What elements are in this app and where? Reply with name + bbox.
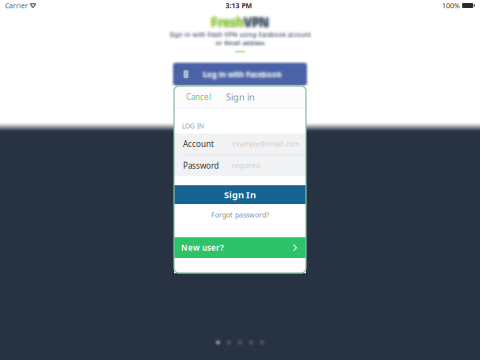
- staticText: Sign in: [226, 90, 255, 103]
- staticText: Fresh: [208, 12, 241, 29]
- staticText: Sign in with Fresh VPN using Facebook ac…: [171, 28, 312, 36]
- staticText: Fresh: [209, 11, 242, 27]
- staticText: or Email address: [215, 38, 264, 47]
- staticText: or Email address: [218, 39, 267, 48]
- staticText: Log in with Facebook: [204, 72, 282, 81]
- staticText: or Email address: [214, 36, 263, 45]
- staticText: Log in with Facebook: [202, 70, 280, 80]
- staticText: Log in with Facebook: [205, 67, 283, 77]
- staticText: Sign in with Fresh VPN using Facebook ac…: [169, 30, 310, 38]
- staticText: Fresh: [214, 11, 247, 27]
- staticText: Log in with Facebook: [205, 69, 283, 79]
- staticText: or Email address: [217, 39, 266, 48]
- staticText: Sign in with Fresh VPN using Facebook ac…: [171, 32, 312, 41]
- button[interactable]: New user?: [174, 237, 306, 258]
- button[interactable]: Cancel: [174, 86, 219, 108]
- staticText: or Email address: [213, 38, 262, 47]
- staticText: or Email address: [213, 37, 262, 46]
- staticText: VPN: [241, 11, 266, 27]
- staticText: or Email address: [217, 36, 266, 45]
- staticText: Log in with Facebook: [205, 72, 283, 81]
- staticText: Sign in with Fresh VPN using Facebook ac…: [169, 28, 310, 36]
- staticText: or Email address: [218, 36, 267, 45]
- staticText: Carrier: [5, 1, 28, 10]
- staticText: Fresh: [212, 17, 245, 33]
- staticText: Log in with Facebook: [201, 67, 279, 77]
- staticText: Log in with Facebook: [201, 69, 279, 79]
- staticText: Log in with Facebook: [201, 68, 279, 78]
- staticText: Log in with Facebook: [204, 69, 282, 79]
- button[interactable]: Forgot password?: [174, 204, 306, 225]
- staticText: or Email address: [215, 37, 264, 46]
- staticText: Fresh: [208, 11, 241, 27]
- staticText: Sign in with Fresh VPN using Facebook ac…: [171, 31, 312, 39]
- staticText: Sign in with Fresh VPN using Facebook ac…: [171, 29, 312, 37]
- staticText: VPN: [247, 15, 272, 32]
- staticText: VPN: [241, 12, 266, 29]
- staticText: Log in with Facebook: [202, 67, 280, 77]
- staticText: Sign in with Fresh VPN using Facebook ac…: [172, 32, 313, 41]
- staticText: VPN: [241, 15, 266, 32]
- staticText: Fresh: [214, 14, 247, 30]
- staticText: Log in with Facebook: [204, 67, 282, 77]
- staticText: Fresh: [212, 15, 245, 32]
- staticText: 3:13 PM: [225, 1, 252, 10]
- staticText: or Email address: [217, 38, 266, 47]
- button[interactable]: Sign In: [174, 185, 306, 204]
- staticText: Sign in with Fresh VPN using Facebook ac…: [172, 30, 313, 38]
- staticText: Fresh: [212, 14, 245, 30]
- staticText: Log in with Facebook: [204, 68, 282, 78]
- staticText: Fresh: [208, 17, 241, 33]
- staticText: VPN: [242, 11, 267, 27]
- staticText: Password: [183, 160, 219, 171]
- staticText: Fresh: [214, 12, 247, 29]
- staticText: or Email address: [217, 37, 266, 46]
- staticText: VPN: [247, 14, 272, 30]
- staticText: or Email address: [218, 41, 267, 49]
- staticText: Sign in with Fresh VPN using Facebook ac…: [168, 29, 309, 37]
- staticText: Sign in with Fresh VPN using Facebook ac…: [168, 28, 309, 36]
- staticText: Sign in with Fresh VPN using Facebook ac…: [172, 31, 313, 39]
- staticText: or Email address: [214, 37, 263, 46]
- staticText: Fresh: [211, 12, 244, 29]
- staticText: or Email address: [214, 41, 263, 49]
- staticText: VPN: [241, 17, 266, 33]
- staticText: or Email address: [213, 36, 262, 45]
- staticText: or Email address: [214, 38, 263, 47]
- staticText: VPN: [244, 12, 269, 29]
- staticText: Forgot password?: [211, 210, 269, 219]
- staticText: VPN: [245, 17, 270, 33]
- staticText: Sign in with Fresh VPN using Facebook ac…: [167, 31, 308, 39]
- staticText: Sign in with Fresh VPN using Facebook ac…: [172, 29, 313, 37]
- staticText: Sign in with Fresh VPN using Facebook ac…: [168, 30, 309, 38]
- staticText: VPN: [244, 14, 269, 30]
- staticText: or Email address: [218, 38, 267, 47]
- staticText: Sign in with Fresh VPN using Facebook ac…: [167, 30, 308, 38]
- staticText: Sign in with Fresh VPN using Facebook ac…: [169, 29, 310, 37]
- staticText: or Email address: [215, 36, 264, 45]
- staticText: LOG IN: [182, 121, 204, 130]
- staticText: or Email address: [218, 37, 267, 46]
- staticText: Log in with Facebook: [202, 68, 280, 78]
- staticText: or Email address: [215, 39, 264, 48]
- staticText: Fresh: [214, 17, 247, 33]
- staticText: Fresh: [209, 14, 242, 30]
- staticText: Fresh: [211, 17, 244, 33]
- staticText: Sign In: [224, 188, 256, 201]
- staticText: Fresh: [208, 14, 241, 30]
- staticText: Sign in with Fresh VPN using Facebook ac…: [172, 28, 313, 36]
- staticText: required: [232, 161, 260, 170]
- staticText: Sign in with Fresh VPN using Facebook ac…: [169, 32, 310, 41]
- staticText: VPN: [247, 17, 272, 33]
- staticText: Log in with Facebook: [201, 70, 279, 80]
- staticText: VPN: [247, 11, 272, 27]
- staticText: Log in with Facebook: [203, 69, 281, 79]
- staticText: Log in with Facebook: [203, 68, 281, 78]
- staticText: Fresh: [208, 15, 241, 32]
- staticText: or Email address: [217, 41, 266, 49]
- staticText: Fresh: [211, 11, 244, 27]
- staticText: VPN: [242, 17, 267, 33]
- staticText: Log in with Facebook: [205, 68, 283, 78]
- staticText: VPN: [244, 15, 269, 32]
- staticText: Fresh: [212, 11, 245, 27]
